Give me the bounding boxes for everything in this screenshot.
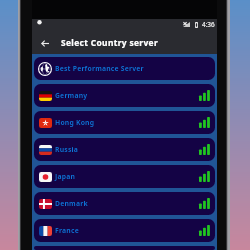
button[interactable]: Best Performance Server: [34, 57, 215, 80]
staticText: France: [55, 226, 79, 235]
button[interactable]: Russia: [34, 138, 215, 161]
button[interactable]: Denmark: [34, 192, 215, 215]
staticText: Hong Kong: [55, 118, 95, 127]
staticText: Select Country server: [61, 37, 159, 48]
button[interactable]: [34, 246, 215, 250]
button[interactable]: Back: [36, 34, 54, 52]
staticText: Best Performance Server: [55, 64, 144, 73]
button[interactable]: Germany: [34, 84, 215, 107]
button[interactable]: Japan: [34, 165, 215, 188]
staticText: Denmark: [55, 199, 88, 208]
staticText: Germany: [55, 91, 88, 100]
staticText: 4:36: [202, 20, 215, 29]
staticText: Russia: [55, 145, 79, 154]
button[interactable]: France: [34, 219, 215, 242]
button[interactable]: Hong Kong: [34, 111, 215, 134]
staticText: Japan: [55, 172, 76, 181]
